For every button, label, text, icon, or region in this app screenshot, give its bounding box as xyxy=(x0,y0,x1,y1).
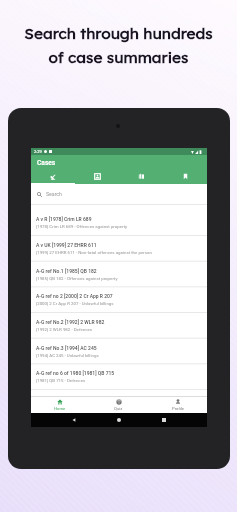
button[interactable]: Library xyxy=(119,171,163,184)
staticText: [1985] QB 182 - Offences against propert… xyxy=(36,276,118,281)
button[interactable]: A-G ref No.3 [1994] AC 245 xyxy=(31,338,207,364)
other: Home xyxy=(117,418,121,422)
staticText: A-G ref No.2 [1992] 2 WLR 982 xyxy=(36,319,105,325)
other: Back xyxy=(72,418,76,422)
staticText: 2:29 xyxy=(34,149,42,154)
staticText: Search through hundreds of case summarie… xyxy=(0,24,237,66)
button[interactable]: A v UK [1999] 27 EHRR 611 xyxy=(31,235,207,261)
button[interactable]: A-G ref no 2 [2000] 2 Cr App R 207 xyxy=(31,286,207,312)
button[interactable]: Home xyxy=(31,397,89,413)
staticText: A-G ref No.1 [1985] QB 182 xyxy=(36,268,97,274)
staticText: [1978] Crim LR 689 - Offences against pr… xyxy=(36,224,128,229)
staticText: [1994] AC 245 - Unlawful killings xyxy=(36,353,99,358)
staticText: [1981] QB 715 - Defences xyxy=(36,378,86,383)
staticText: Cases xyxy=(37,159,56,167)
button[interactable]: Cases xyxy=(31,171,75,184)
staticText: A v UK [1999] 27 EHRR 611 xyxy=(36,242,97,248)
button[interactable]: A-G ref no 6 of 1980 [1981] QB 715 xyxy=(31,363,207,389)
button[interactable]: Quiz xyxy=(89,397,148,413)
staticText: A-G ref no 6 of 1980 [1981] QB 715 xyxy=(36,370,115,376)
staticText: A-G ref no 2 [2000] 2 Cr App R 207 xyxy=(36,293,113,299)
button[interactable]: Search xyxy=(31,184,207,204)
button[interactable]: Bookmarks xyxy=(163,171,207,184)
staticText: [1992] 2 WLR 982 - Defences xyxy=(36,327,93,332)
button[interactable]: Profile xyxy=(148,397,207,413)
button[interactable]: Statutes xyxy=(75,171,119,184)
button[interactable]: A v R [1978] Crim LR 689 xyxy=(31,209,207,235)
button[interactable]: A-G ref No.2 [1992] 2 WLR 982 xyxy=(31,312,207,338)
staticText: [2000] 2 Cr App R 207 - Unlawful killing… xyxy=(36,301,114,306)
staticText: A v R [1978] Crim LR 689 xyxy=(36,216,92,222)
staticText: Quiz xyxy=(114,406,123,411)
staticText: Home xyxy=(54,406,66,411)
staticText: Profile xyxy=(172,406,184,411)
staticText: [1999] 27 EHRR 611 - Non-fatal offences … xyxy=(36,250,152,255)
staticText: Search xyxy=(46,191,62,197)
staticText: A-G ref No.3 [1994] AC 245 xyxy=(36,345,97,351)
button[interactable]: A-G ref No.1 [1985] QB 182 xyxy=(31,261,207,287)
